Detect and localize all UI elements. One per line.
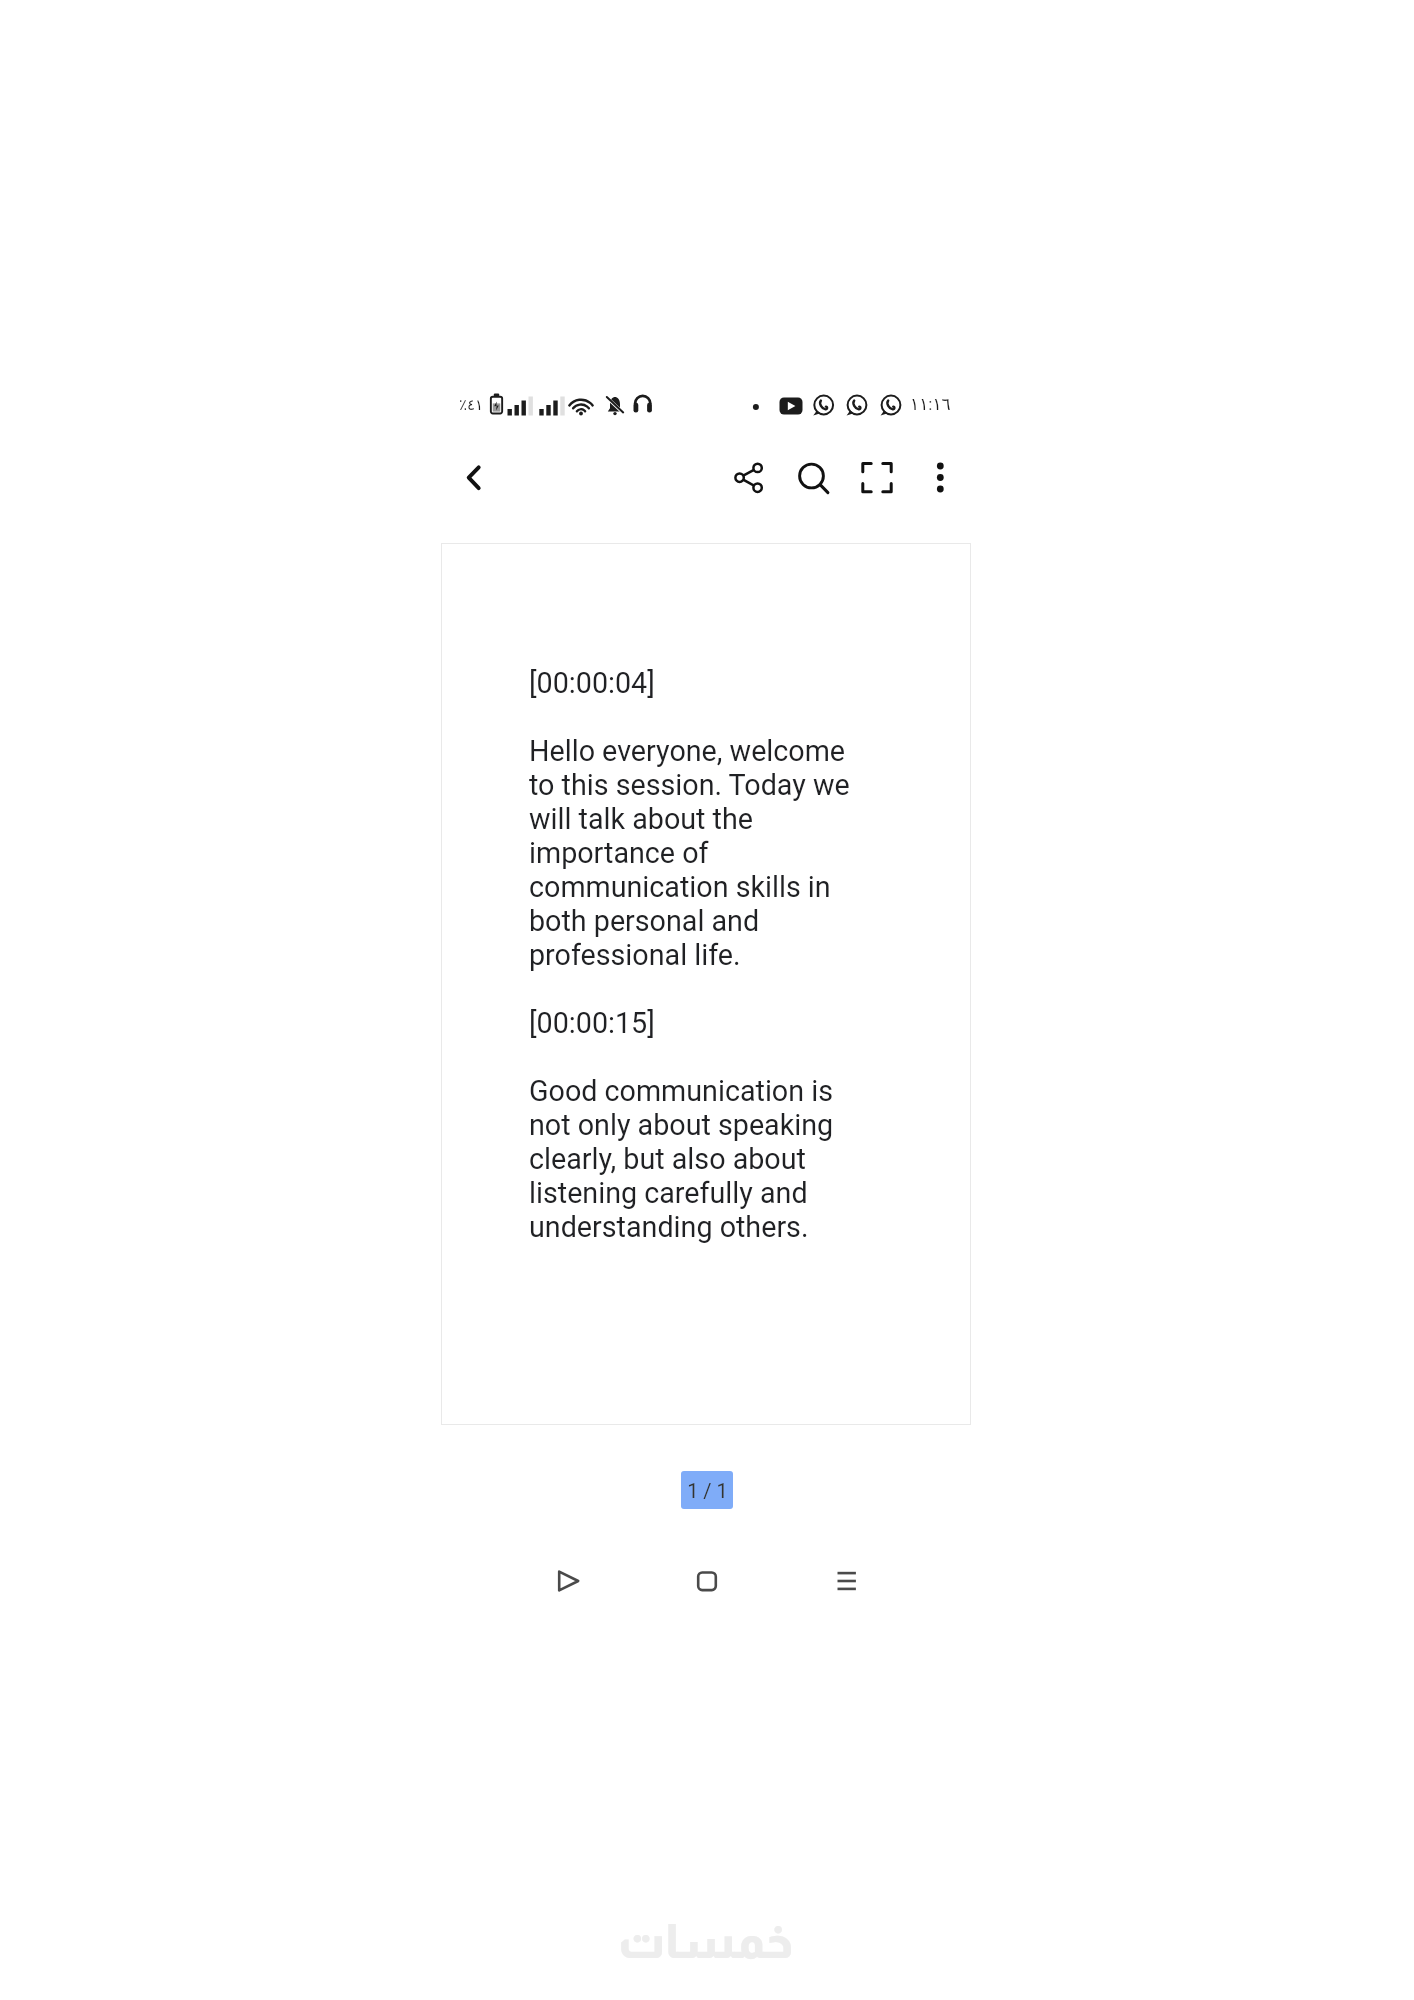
staticText: [00:00:04]: [529, 666, 655, 700]
staticText: Good communication is not only about spe…: [529, 1074, 856, 1244]
staticText: Hello everyone, welcome to this session.…: [529, 734, 856, 972]
staticText: خمسات: [618, 1915, 794, 1967]
button[interactable]: Recent apps: [814, 1549, 878, 1613]
button[interactable]: Back: [537, 1549, 601, 1613]
staticText: ٪٤١: [459, 396, 484, 413]
staticText: 1 / 1: [687, 1479, 728, 1502]
staticText: [00:00:15]: [529, 1006, 655, 1040]
button[interactable]: Search: [784, 450, 840, 506]
button[interactable]: [00:00:04]: [441, 543, 971, 1425]
button[interactable]: More options: [912, 450, 968, 506]
button[interactable]: Back: [446, 450, 502, 506]
button[interactable]: Home: [675, 1549, 739, 1613]
button[interactable]: Share: [721, 450, 777, 506]
staticText: ١١:١٦: [910, 394, 951, 414]
button[interactable]: Fullscreen: [849, 450, 905, 506]
button[interactable]: 1 / 1: [681, 1471, 733, 1509]
